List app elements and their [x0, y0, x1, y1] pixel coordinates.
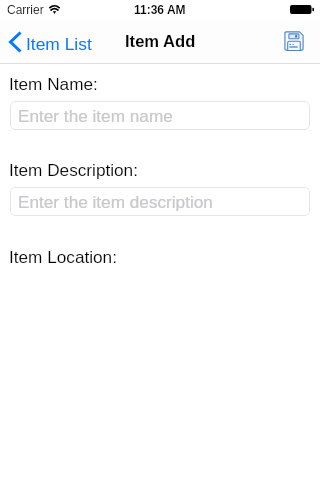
staticText: Enter the item name [18, 106, 173, 125]
button[interactable]: Item List [4, 26, 99, 58]
staticText: Item List [26, 34, 92, 53]
staticText: 11:36 AM [134, 3, 186, 16]
staticText: Item Name: [9, 74, 98, 93]
button[interactable]: Enter the item description [10, 187, 310, 216]
staticText: Item Add [125, 32, 196, 51]
staticText: Carrier [7, 3, 44, 16]
button[interactable]: Enter the item name [10, 101, 310, 130]
staticText: Item Description: [9, 160, 138, 179]
staticText: Item Location: [9, 247, 117, 266]
button[interactable]: Save [280, 27, 308, 55]
staticText: Enter the item description [18, 192, 213, 211]
